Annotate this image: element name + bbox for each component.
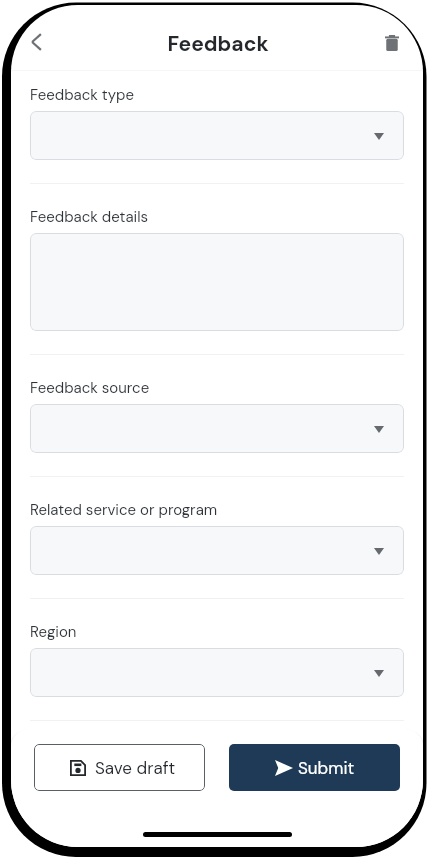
staticText: Feedback type bbox=[30, 85, 134, 105]
staticText: Save draft bbox=[95, 757, 176, 779]
staticText: Submit bbox=[298, 757, 355, 779]
button[interactable]: Save draft bbox=[34, 744, 205, 791]
button[interactable]: Open dropdown bbox=[30, 648, 404, 697]
staticText: Feedback bbox=[167, 30, 269, 57]
button[interactable]: Back bbox=[14, 20, 58, 64]
button[interactable]: Feedback details bbox=[30, 233, 404, 331]
button[interactable]: Submit bbox=[229, 744, 400, 791]
staticText: Region bbox=[30, 622, 77, 642]
button[interactable]: Delete bbox=[372, 23, 412, 63]
button[interactable]: Open dropdown bbox=[30, 404, 404, 453]
staticText: Related service or program bbox=[30, 500, 218, 520]
staticText: Feedback details bbox=[30, 207, 149, 227]
button[interactable]: Open dropdown bbox=[30, 526, 404, 575]
button[interactable]: Open dropdown bbox=[30, 111, 404, 160]
staticText: Feedback source bbox=[30, 378, 150, 398]
